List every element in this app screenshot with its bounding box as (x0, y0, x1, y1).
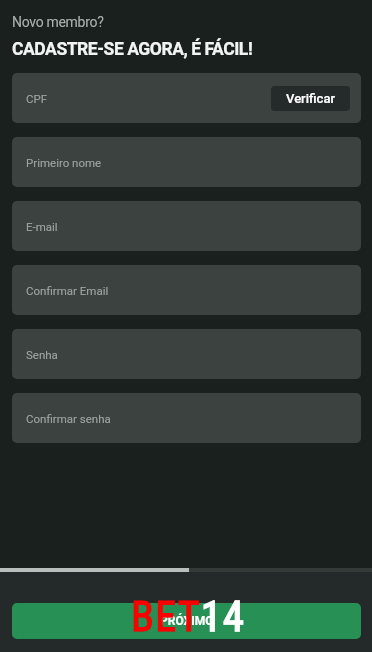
button[interactable]: CPF (12, 73, 361, 123)
staticText: Verificar (286, 91, 335, 106)
staticText: PRÓXIMO (160, 614, 214, 628)
staticText: Senha (26, 348, 58, 361)
button[interactable]: Confirmar senha (12, 393, 361, 443)
staticText: Confirmar senha (26, 412, 111, 425)
button[interactable]: Verificar (271, 86, 350, 111)
button[interactable]: PRÓXIMO (12, 603, 361, 639)
staticText: Primeiro nome (26, 156, 102, 169)
button[interactable]: Senha (12, 329, 361, 379)
button[interactable]: Confirmar Email (12, 265, 361, 315)
staticText: BET14 (131, 592, 246, 641)
staticText: CPF (26, 92, 48, 105)
button[interactable]: Primeiro nome (12, 137, 361, 187)
staticText: Confirmar Email (26, 284, 109, 297)
staticText: E-mail (26, 220, 58, 233)
button[interactable]: E-mail (12, 201, 361, 251)
staticText: CADASTRE-SE AGORA, É FÁCIL! (12, 39, 253, 60)
staticText: Novo membro? (12, 14, 104, 30)
